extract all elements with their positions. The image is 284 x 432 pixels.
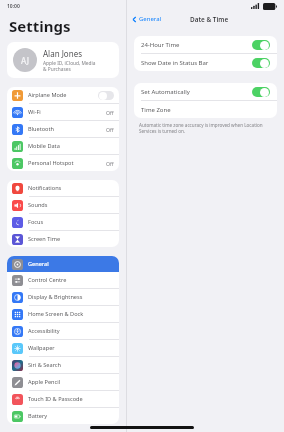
staticText: Siri & Search [28,361,61,369]
button[interactable]: Screen Time [7,231,119,247]
button[interactable]: Sounds [7,197,119,213]
staticText: Home Screen & Dock [28,310,84,318]
staticText: Off [106,109,114,116]
button[interactable]: Display & Brightness [7,289,119,305]
staticText: General [139,15,162,23]
button[interactable]: Siri & Search [7,357,119,373]
button[interactable]: Apple Pencil [7,374,119,390]
button[interactable]: AJ [7,42,119,78]
button[interactable]: Bluetooth [7,121,119,137]
staticText: Touch ID & Passcode [28,395,83,403]
button[interactable]: Personal Hotspot [7,155,119,171]
button[interactable]: Mobile Data [7,138,119,154]
staticText: Personal Hotspot [28,159,74,167]
button[interactable]: Set Automatically [134,83,277,100]
button[interactable]: Toggle on [252,58,270,68]
button[interactable]: Show Date in Status Bar [134,54,277,71]
button[interactable]: Wi-Fi [7,104,119,120]
button[interactable]: Touch ID & Passcode [7,391,119,407]
button[interactable]: Toggle off [98,91,114,100]
staticText: Wi-Fi [28,108,41,116]
button[interactable]: Focus [7,214,119,230]
staticText: Screen Time [28,235,61,243]
staticText: Wallpaper [28,344,55,352]
staticText: Set Automatically [141,88,190,96]
staticText: Notifications [28,184,62,192]
staticText: Focus [28,218,44,226]
staticText: Apple ID, iCloud, Media & Purchases [43,60,96,72]
button[interactable]: Battery [7,408,119,424]
button[interactable]: Home Screen & Dock [7,306,119,322]
button[interactable]: Airplane Mode [7,87,119,103]
staticText: Mobile Data [28,142,60,150]
staticText: Alan Jones [43,48,82,59]
staticText: AJ [21,55,29,66]
staticText: Airplane Mode [28,91,67,99]
button[interactable]: General [127,13,166,25]
button[interactable]: Wallpaper [7,340,119,356]
button[interactable]: Accessibility [7,323,119,339]
button[interactable]: General [7,256,119,272]
staticText: Show Date in Status Bar [141,59,209,67]
button[interactable]: 24-Hour Time [134,36,277,53]
button[interactable]: Control Centre [7,272,119,288]
button[interactable]: Toggle on [252,87,270,97]
staticText: Control Centre [28,276,67,284]
button[interactable]: Notifications [7,180,119,196]
staticText: Settings [9,16,71,36]
staticText: Automatic time zone accuracy is improved… [139,122,263,134]
staticText: Off [106,160,114,167]
button[interactable]: Time Zone [134,101,277,118]
staticText: Accessibility [28,327,60,335]
staticText: 24-Hour Time [141,41,180,49]
staticText: Off [106,126,114,133]
staticText: Apple Pencil [28,378,61,386]
staticText: Bluetooth [28,125,54,133]
staticText: General [28,260,49,268]
staticText: 10:00 [7,3,20,10]
staticText: Battery [28,412,48,420]
staticText: Sounds [28,201,48,209]
button[interactable]: Toggle on [252,40,270,50]
staticText: Date & Time [190,15,229,24]
staticText: Display & Brightness [28,293,83,301]
staticText: Time Zone [141,106,171,114]
